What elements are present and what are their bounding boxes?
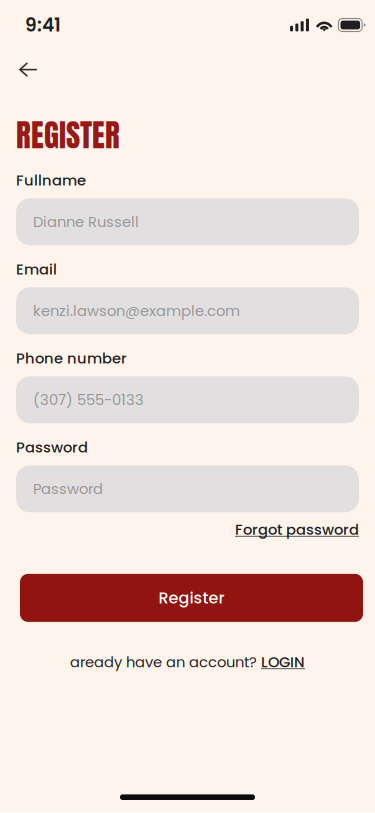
staticText: Password bbox=[33, 479, 103, 499]
staticText: Forgot password bbox=[235, 519, 359, 540]
staticText: Email bbox=[16, 259, 57, 280]
staticText: Fullname bbox=[16, 170, 86, 191]
button[interactable]: Password bbox=[16, 465, 359, 512]
staticText: REGISTER bbox=[16, 112, 120, 158]
staticText: (307) 555-0133 bbox=[33, 390, 144, 410]
button[interactable]: (307) 555-0133 bbox=[16, 376, 359, 423]
staticText: Password bbox=[16, 437, 88, 458]
button[interactable]: Register bbox=[20, 574, 363, 622]
staticText: 9:41 bbox=[25, 12, 61, 38]
staticText: aready have an account? bbox=[70, 652, 261, 672]
button[interactable]: kenzi.lawson@example.com bbox=[16, 287, 359, 334]
button[interactable]: Dianne Russell bbox=[16, 198, 359, 245]
button[interactable]: Back bbox=[9, 52, 48, 87]
button[interactable]: Forgot password bbox=[235, 519, 359, 540]
staticText: Phone number bbox=[16, 348, 127, 369]
staticText: kenzi.lawson@example.com bbox=[33, 301, 240, 321]
button[interactable]: LOGIN bbox=[261, 652, 305, 672]
staticText: LOGIN bbox=[261, 652, 305, 672]
staticText: Dianne Russell bbox=[33, 212, 139, 232]
staticText: Register bbox=[158, 587, 224, 609]
